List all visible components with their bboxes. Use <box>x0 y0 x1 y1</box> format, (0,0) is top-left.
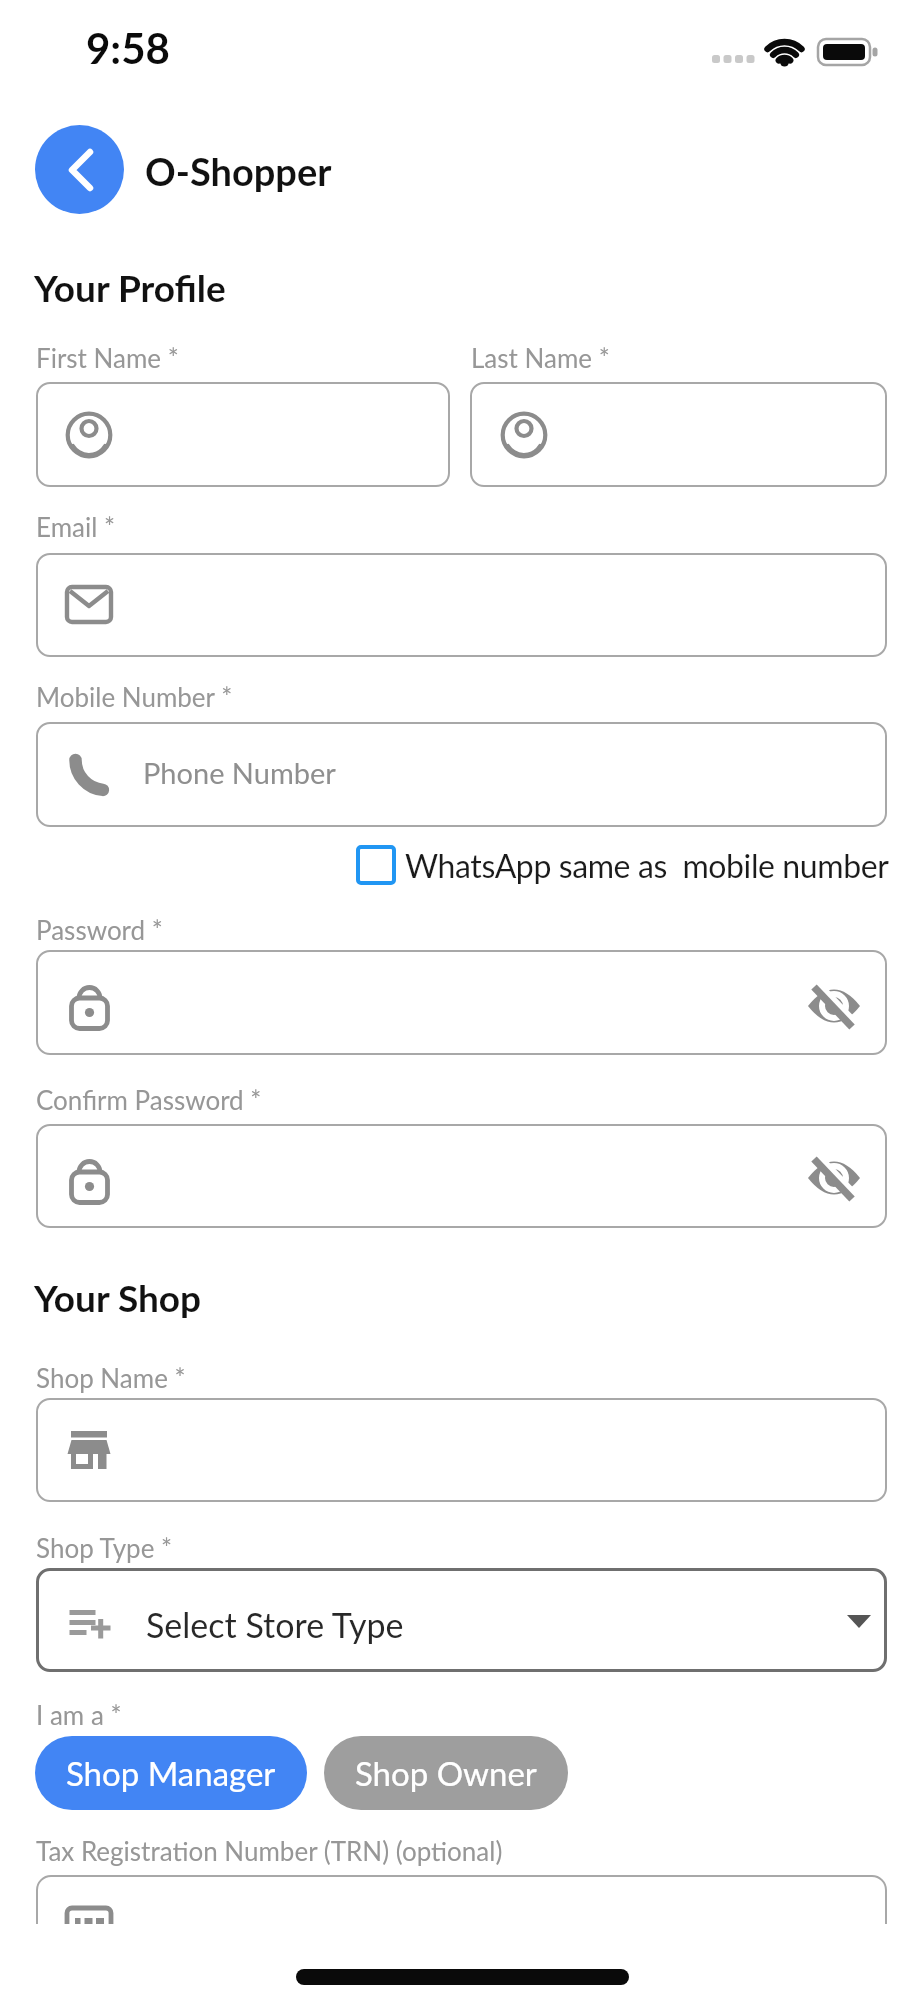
staticText: WhatsApp same as mobile number <box>405 846 889 884</box>
button[interactable] <box>804 1148 864 1208</box>
staticText: Last Name * <box>471 342 610 373</box>
button[interactable] <box>36 1124 887 1228</box>
staticText: 9:58 <box>86 23 170 73</box>
button[interactable] <box>356 845 396 885</box>
button[interactable] <box>36 1875 887 1924</box>
staticText: Confirm Password * <box>36 1084 262 1115</box>
staticText: Select Store Type <box>146 1604 404 1645</box>
button[interactable] <box>36 722 887 827</box>
staticText: O-Shopper <box>145 148 332 194</box>
staticText: Shop Name * <box>36 1362 186 1393</box>
button[interactable] <box>804 976 864 1036</box>
button[interactable]: Shop Owner <box>324 1736 568 1810</box>
staticText: I am a * <box>36 1699 122 1730</box>
staticText: Shop Owner <box>355 1753 537 1793</box>
button[interactable] <box>36 950 887 1055</box>
staticText: Phone Number <box>143 755 336 790</box>
staticText: Mobile Number * <box>36 681 233 712</box>
button[interactable]: WhatsApp same as mobile number <box>330 843 889 887</box>
button[interactable] <box>36 1568 887 1672</box>
button[interactable] <box>470 382 887 487</box>
staticText: Password * <box>36 914 163 945</box>
staticText: First Name * <box>36 342 179 373</box>
staticText: Shop Manager <box>66 1753 276 1793</box>
staticText: Your Profile <box>34 265 226 309</box>
staticText: Your Shop <box>34 1275 202 1319</box>
staticText: Shop Type * <box>36 1532 173 1563</box>
button[interactable] <box>36 553 887 657</box>
button[interactable] <box>36 382 450 487</box>
staticText: Email * <box>36 511 116 542</box>
button[interactable] <box>35 125 124 214</box>
button[interactable] <box>36 1398 887 1502</box>
staticText: Tax Registration Number (TRN) (optional) <box>36 1835 503 1866</box>
button[interactable]: Shop Manager <box>35 1736 307 1810</box>
